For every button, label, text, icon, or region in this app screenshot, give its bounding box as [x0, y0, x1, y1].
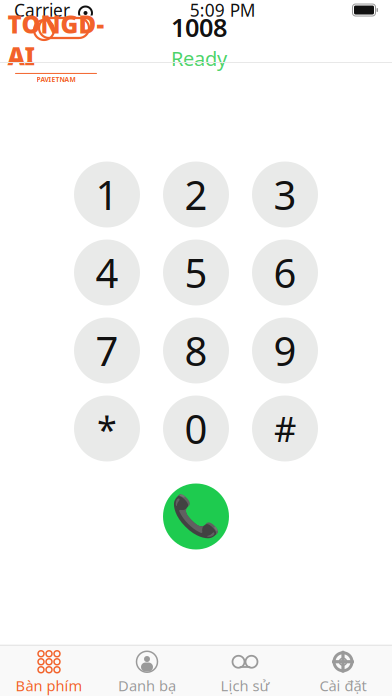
button[interactable]: *	[74, 395, 140, 461]
staticText: 📞	[171, 494, 221, 539]
staticText: #	[274, 405, 296, 451]
button[interactable]: 0	[163, 395, 229, 461]
staticText: 1008	[171, 10, 227, 44]
button[interactable]: Lịch sử	[196, 646, 294, 696]
button[interactable]: #	[252, 395, 318, 461]
button[interactable]: Danh bạ	[98, 646, 196, 696]
staticText: 9	[273, 324, 296, 377]
staticText: 7	[95, 324, 118, 377]
button[interactable]: 1	[74, 161, 140, 227]
staticText: Bàn phím	[15, 676, 82, 695]
button[interactable]: 3	[252, 161, 318, 227]
button[interactable]: 6	[252, 239, 318, 305]
button[interactable]: Bàn phím	[0, 646, 98, 696]
staticText: 6	[273, 246, 296, 299]
staticText: 3	[273, 168, 296, 221]
staticText: 5:09 PM	[190, 0, 256, 21]
staticText: Carrier	[14, 0, 70, 21]
button[interactable]: 2	[163, 161, 229, 227]
staticText: 4	[95, 246, 118, 299]
staticText: 0	[184, 402, 207, 455]
staticText: Cài đặt	[319, 676, 366, 695]
staticText: Danh bạ	[118, 676, 176, 695]
staticText: 8	[184, 324, 207, 377]
staticText: Lịch sử	[220, 676, 269, 695]
staticText: TONGDAI	[7, 8, 104, 72]
button[interactable]: 7	[74, 317, 140, 383]
staticText: 2	[184, 168, 207, 221]
button[interactable]: 9	[252, 317, 318, 383]
staticText: Ready	[171, 45, 227, 72]
button[interactable]: 5	[163, 239, 229, 305]
staticText: PAVIETNAM	[36, 75, 75, 84]
staticText: 1	[95, 168, 118, 221]
button[interactable]: 8	[163, 317, 229, 383]
staticText: *	[97, 405, 117, 452]
button[interactable]: Cài đặt	[294, 646, 392, 696]
staticText: 5	[184, 246, 207, 299]
button[interactable]: 4	[74, 239, 140, 305]
button[interactable]: Call	[163, 483, 229, 549]
